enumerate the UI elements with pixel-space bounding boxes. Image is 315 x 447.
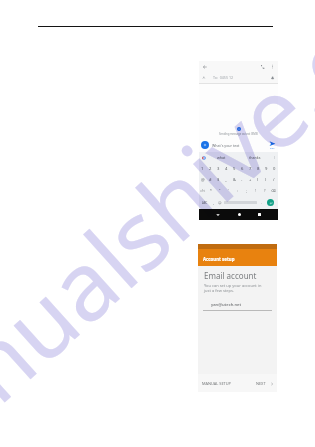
staticText: Account setup	[203, 256, 235, 262]
button[interactable]: 1	[199, 163, 206, 174]
button[interactable]: 7	[246, 163, 254, 174]
button[interactable]: (	[254, 174, 262, 185]
button[interactable]: NEXT	[256, 381, 274, 386]
button[interactable]: )	[262, 174, 270, 185]
button[interactable]: Call	[260, 64, 265, 69]
button[interactable]: '	[224, 185, 233, 196]
button[interactable]: Space	[224, 201, 257, 204]
button[interactable]: Back	[202, 61, 275, 72]
button[interactable]: 2	[206, 163, 214, 174]
staticText: =\<	[200, 188, 206, 193]
staticText: Sending message as text (SMS)	[219, 132, 259, 136]
button[interactable]: :	[233, 185, 242, 196]
staticText: #	[209, 177, 212, 182]
button[interactable]: ?	[260, 185, 269, 196]
button[interactable]: Account setup	[198, 249, 277, 266]
staticText: what	[217, 155, 226, 160]
staticText: 2	[209, 166, 212, 172]
button[interactable]: Recents	[258, 213, 261, 216]
button[interactable]: Back	[216, 213, 220, 217]
button[interactable]: Back	[202, 64, 208, 70]
button[interactable]: /	[270, 174, 278, 185]
button[interactable]: More options	[270, 64, 275, 69]
staticText: ⌫	[271, 189, 276, 193]
button[interactable]: #	[206, 174, 214, 185]
button[interactable]: =\<	[199, 185, 207, 196]
staticText: ☺	[218, 201, 222, 205]
staticText: To: 0455 12	[213, 75, 234, 80]
staticText: What's your text	[212, 143, 240, 148]
staticText: NEXT	[256, 381, 266, 386]
button[interactable]: +	[246, 174, 254, 185]
staticText: MANUAL SETUP	[202, 381, 231, 386]
other: Contact	[202, 76, 206, 80]
button[interactable]: 8	[254, 163, 262, 174]
button[interactable]: &	[230, 174, 238, 185]
staticText: You can set up your account in just a fe…	[204, 283, 262, 293]
staticText: _	[225, 177, 227, 182]
staticText: 1	[201, 166, 204, 172]
button[interactable]: 6	[238, 163, 246, 174]
staticText: $	[217, 177, 220, 182]
staticText: 8	[257, 166, 260, 172]
staticText: !	[255, 188, 256, 193]
staticText: 9	[265, 166, 268, 172]
staticText: 0	[273, 166, 276, 172]
staticText: .	[261, 200, 262, 205]
staticText: ABC	[202, 201, 208, 205]
staticText: *	[210, 188, 212, 193]
button[interactable]: MANUAL SETUP	[202, 381, 231, 386]
staticText: /	[273, 177, 275, 182]
staticText: 6	[241, 166, 244, 172]
button[interactable]: 0	[270, 163, 278, 174]
staticText: ,	[213, 200, 214, 205]
staticText: )	[265, 177, 267, 182]
staticText: -	[241, 177, 243, 182]
staticText: Email account	[204, 270, 257, 281]
other: Send	[269, 140, 276, 150]
button[interactable]: _	[222, 174, 230, 185]
button[interactable]: 5	[230, 163, 238, 174]
button[interactable]: Contact	[202, 72, 275, 83]
staticText: "	[219, 188, 221, 193]
other: Add attachment	[201, 141, 209, 149]
staticText: :	[237, 188, 238, 193]
button[interactable]: 4	[222, 163, 230, 174]
button[interactable]: ⌫	[269, 185, 278, 196]
button[interactable]: Enter	[267, 199, 274, 206]
button[interactable]: @	[199, 174, 206, 185]
staticText: ;	[246, 188, 247, 193]
button[interactable]: 9	[262, 163, 270, 174]
staticText: 7	[249, 166, 252, 172]
staticText: 5	[233, 166, 236, 172]
staticText: +	[249, 177, 252, 182]
button[interactable]: -	[238, 174, 246, 185]
button[interactable]: $	[214, 174, 222, 185]
staticText: thanks	[249, 155, 261, 160]
staticText: ?	[264, 188, 266, 193]
staticText: SMS	[270, 147, 275, 150]
button[interactable]: !	[251, 185, 260, 196]
staticText: yan@utech.net	[211, 302, 242, 308]
button[interactable]: "	[215, 185, 224, 196]
staticText: &	[233, 177, 236, 182]
button[interactable]: Home	[238, 213, 241, 216]
staticText: 3	[217, 166, 220, 172]
button[interactable]: 3	[214, 163, 222, 174]
staticText: (	[257, 177, 259, 182]
staticText: '	[228, 188, 229, 193]
button[interactable]: ;	[242, 185, 251, 196]
other: Add contact	[271, 76, 275, 80]
button[interactable]: *	[207, 185, 215, 196]
button[interactable]: Add attachment	[201, 138, 276, 152]
staticText: @	[201, 177, 205, 182]
staticText: 4	[225, 166, 228, 172]
